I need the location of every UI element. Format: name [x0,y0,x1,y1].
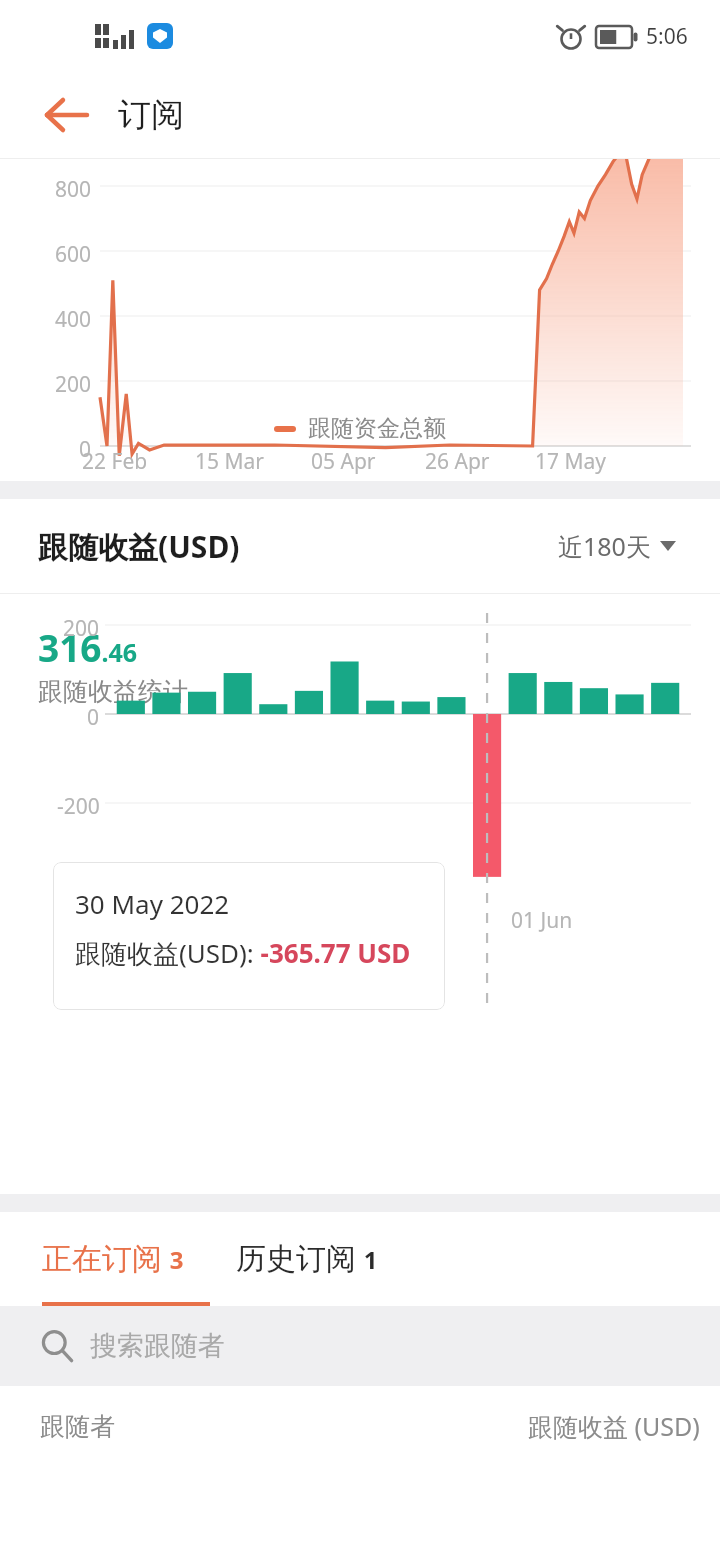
staticText: 316.46 [38,622,138,672]
staticText: 0 [79,435,92,464]
staticText: 正在订阅 3 [42,1237,184,1278]
button[interactable]: Back [38,87,94,143]
staticText: 01 Jun [511,906,573,935]
staticText: 17 May [535,447,607,476]
staticText: 15 Mar [195,447,264,476]
staticText: 5:06 [646,22,688,51]
staticText: 800 [55,175,92,204]
staticText: 订阅 [118,94,184,136]
staticText: 26 Apr [425,447,490,476]
staticText: 跟随收益(USD) [38,526,240,567]
staticText: 30 May 2022 [75,886,230,921]
staticText: 0 [87,703,100,732]
staticText: 400 [55,305,92,334]
button[interactable]: 搜索跟随者 [0,1306,720,1386]
staticText: -200 [57,792,100,821]
staticText: 600 [55,240,92,269]
staticText: 跟随收益统计 [38,676,188,707]
staticText: 跟随收益 (USD) [528,1409,700,1443]
staticText: 200 [55,370,92,399]
staticText: 200 [63,614,100,643]
staticText: 05 Apr [311,447,376,476]
staticText: 跟随者 [40,1411,115,1442]
staticText: 近180天 [558,529,651,563]
staticText: 跟随资金总额 [308,414,446,443]
staticText: 搜索跟随者 [90,1329,225,1363]
staticText: 历史订阅 1 [236,1237,378,1278]
button[interactable]: 正在订阅 3 [42,1227,184,1288]
staticText: 22 Feb [82,447,148,476]
staticText: 跟随收益(USD): -365.77 USD [75,935,411,971]
button[interactable]: 近180天 [552,523,682,569]
button[interactable]: 历史订阅 1 [236,1227,378,1288]
